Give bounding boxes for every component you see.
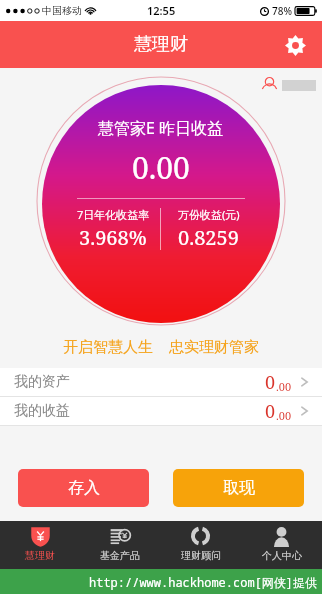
staticText: 万份收益(元) bbox=[178, 207, 240, 222]
staticText: 慧理财 bbox=[134, 33, 188, 56]
staticText: 3.968% bbox=[79, 224, 147, 251]
button[interactable]: 慧管家E 昨日收益 bbox=[42, 85, 280, 323]
staticText: 7日年化收益率 bbox=[77, 207, 150, 222]
staticText: http://www.hackhome.com[网侠]提供 bbox=[89, 574, 318, 590]
staticText: 忠实理财管家 bbox=[169, 338, 259, 357]
staticText: 慧管家E 昨日收益 bbox=[98, 117, 224, 139]
button[interactable]: 我的资产 bbox=[0, 368, 322, 396]
staticText: 我的资产 bbox=[14, 373, 70, 391]
staticText: 0 bbox=[265, 399, 276, 424]
button[interactable]: 我的收益 bbox=[0, 397, 322, 425]
staticText: 12:55 bbox=[147, 3, 176, 18]
button[interactable]: 取现 bbox=[173, 469, 304, 507]
staticText: 取现 bbox=[223, 478, 255, 498]
staticText: .00 bbox=[276, 408, 292, 423]
button[interactable]: Settings bbox=[278, 28, 312, 62]
staticText: 0.00 bbox=[132, 147, 190, 188]
button[interactable]: 存入 bbox=[18, 469, 149, 507]
staticText: 存入 bbox=[68, 478, 100, 498]
staticText: 开启智慧人生 bbox=[63, 338, 153, 357]
button[interactable]: 理财顾问 bbox=[160, 521, 241, 569]
staticText: .00 bbox=[276, 379, 292, 394]
button[interactable]: 基金产品 bbox=[80, 521, 160, 569]
staticText: 个人中心 bbox=[262, 549, 302, 562]
staticText: 慧理财 bbox=[25, 549, 55, 562]
staticText: 0 bbox=[265, 370, 276, 395]
button[interactable]: Account bbox=[260, 76, 316, 95]
staticText: 78% bbox=[272, 4, 292, 18]
button[interactable]: 慧理财 bbox=[0, 521, 80, 569]
staticText: 基金产品 bbox=[100, 549, 140, 562]
staticText: 理财顾问 bbox=[181, 549, 221, 562]
staticText: 0.8259 bbox=[178, 224, 239, 251]
staticText: 我的收益 bbox=[14, 402, 70, 420]
button[interactable]: 个人中心 bbox=[241, 521, 322, 569]
staticText: 中国移动 bbox=[42, 4, 82, 17]
